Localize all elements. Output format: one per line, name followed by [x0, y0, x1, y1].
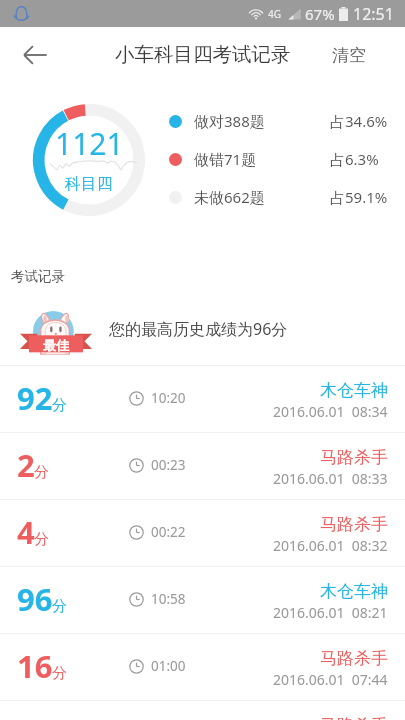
staticText: 01:00 — [151, 657, 186, 675]
staticText: 分 — [34, 530, 49, 549]
staticText: 分 — [34, 463, 49, 482]
staticText: 马路杀手 — [320, 514, 388, 535]
staticText: 10:58 — [151, 590, 186, 608]
staticText: 4G — [268, 7, 281, 21]
staticText: 占6.3% — [330, 149, 379, 169]
staticText: 马路杀手 — [320, 715, 388, 720]
staticText: 00:22 — [151, 523, 186, 541]
staticText: 92 — [17, 377, 53, 419]
staticText: 2016.06.01 07:44 — [273, 670, 388, 689]
staticText: 12:51 — [353, 3, 394, 25]
staticText: 占59.1% — [330, 187, 388, 207]
staticText: 占34.6% — [330, 111, 388, 131]
staticText: 马路杀手 — [320, 648, 388, 669]
staticText: 4 — [17, 511, 35, 553]
staticText: 木仓车神 — [320, 380, 388, 401]
staticText: 00:23 — [151, 456, 186, 474]
button[interactable]: 96 — [0, 567, 405, 633]
staticText: 马路杀手 — [320, 447, 388, 468]
staticText: 最佳 — [43, 337, 69, 353]
staticText: 10:20 — [151, 389, 186, 407]
staticText: 96 — [17, 578, 53, 620]
staticText: 木仓车神 — [320, 581, 388, 602]
staticText: 考试记录 — [11, 268, 65, 285]
staticText: 16 — [17, 645, 53, 687]
staticText: 小车科目四考试记录 — [115, 42, 291, 67]
button[interactable]: Back — [7, 27, 63, 83]
staticText: 科目四 — [65, 174, 113, 194]
button[interactable]: 8 — [0, 701, 405, 720]
button[interactable]: 92 — [0, 366, 405, 432]
button[interactable]: 2 — [0, 433, 405, 499]
staticText: 2016.06.01 08:33 — [273, 469, 388, 488]
button[interactable]: 4 — [0, 500, 405, 566]
staticText: 做错71题 — [194, 149, 257, 169]
staticText: 您的最高历史成绩为96分 — [109, 318, 288, 340]
button[interactable]: 16 — [0, 634, 405, 700]
staticText: 2016.06.01 08:34 — [273, 402, 388, 421]
staticText: 1121 — [55, 123, 124, 164]
button[interactable]: 清空 — [332, 27, 366, 83]
staticText: 做对388题 — [194, 111, 265, 131]
staticText: 67% — [305, 4, 335, 24]
staticText: 分 — [52, 396, 67, 415]
staticText: 2016.06.01 08:32 — [273, 536, 388, 555]
staticText: 未做662题 — [194, 187, 265, 207]
staticText: 清空 — [332, 45, 366, 66]
staticText: 分 — [52, 597, 67, 616]
staticText: 2016.06.01 08:21 — [273, 603, 388, 622]
staticText: 2 — [17, 444, 35, 486]
staticText: 分 — [52, 664, 67, 683]
